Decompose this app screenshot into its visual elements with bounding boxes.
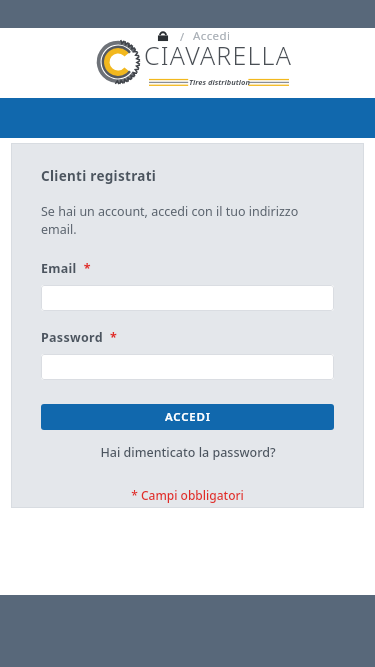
button[interactable]: Text field <box>41 285 334 311</box>
staticText: Tires distribution <box>189 77 250 87</box>
staticText: / <box>180 29 185 44</box>
staticText: * Campi obbligatori <box>131 487 244 503</box>
staticText: Accedi <box>193 28 231 44</box>
staticText: Hai dimenticato la password? <box>100 444 276 461</box>
button[interactable]: ACCEDI <box>41 404 334 430</box>
button[interactable]: Text field <box>41 354 334 380</box>
other: Secure <box>156 29 170 43</box>
staticText: Password * <box>41 329 118 346</box>
staticText: CIAVARELLA <box>144 38 293 72</box>
staticText: Se hai un account, accedi con il tuo ind… <box>41 203 334 238</box>
staticText: Clienti registrati <box>41 167 157 185</box>
button[interactable]: Hai dimenticato la password? <box>41 444 334 461</box>
staticText: ACCEDI <box>165 409 211 425</box>
staticText: Email * <box>41 260 91 277</box>
